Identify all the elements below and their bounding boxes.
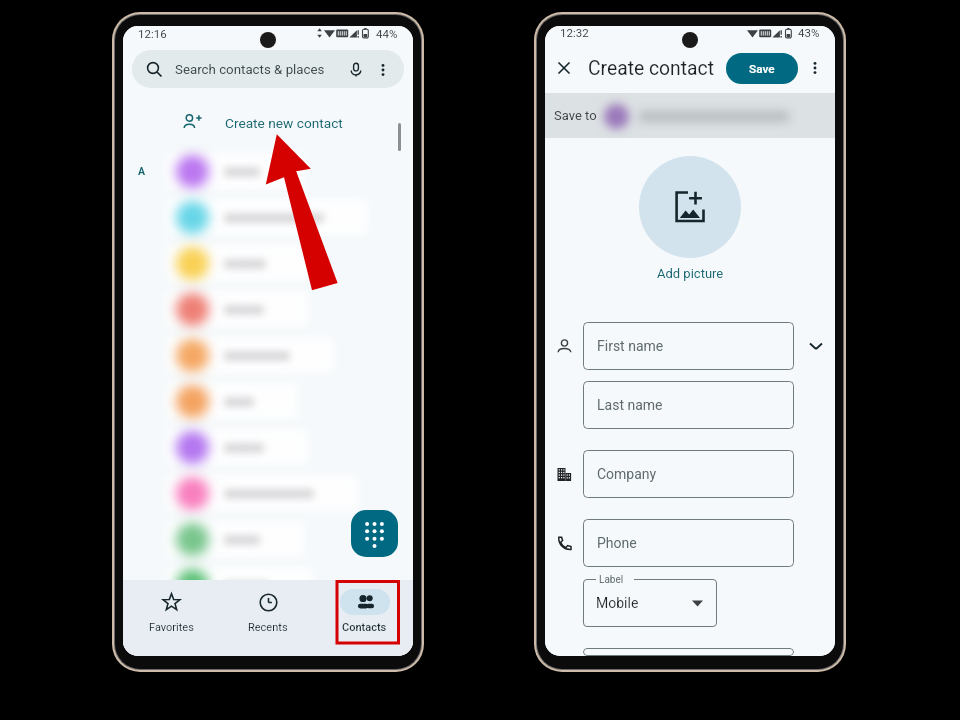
staticText: Create new contact <box>225 115 343 131</box>
button[interactable]: Contacts <box>316 580 413 656</box>
button[interactable]: Company <box>583 450 794 498</box>
button[interactable] <box>639 156 741 258</box>
staticText: 44% <box>376 27 398 40</box>
staticText: Add picture <box>657 266 724 281</box>
button[interactable] <box>123 332 413 378</box>
staticText: A <box>138 165 146 177</box>
staticText: Save to <box>554 108 597 123</box>
button[interactable]: Label <box>583 579 717 627</box>
button[interactable] <box>123 378 413 424</box>
button[interactable] <box>123 424 413 470</box>
staticText: Search contacts & places <box>175 62 325 78</box>
button[interactable]: Create new contact <box>123 110 413 136</box>
button[interactable]: Dialpad <box>351 510 398 557</box>
staticText: 43% <box>798 26 820 39</box>
staticText: Recents <box>248 621 288 634</box>
button[interactable] <box>583 648 794 656</box>
button[interactable] <box>123 240 413 286</box>
staticText: Favorites <box>149 621 194 634</box>
button[interactable]: First name <box>583 322 794 370</box>
staticText: Mobile <box>596 595 639 611</box>
staticText: First name <box>597 338 664 354</box>
staticText: 12:32 <box>560 26 589 39</box>
button[interactable]: Search contacts & places <box>132 50 404 88</box>
button[interactable]: Close <box>551 55 577 81</box>
button[interactable]: More options <box>805 58 825 78</box>
button[interactable]: Last name <box>583 381 794 429</box>
staticText: Phone <box>597 535 637 551</box>
staticText: Create contact <box>588 57 714 80</box>
staticText: Save <box>749 62 775 76</box>
button[interactable]: Favorites <box>123 580 219 656</box>
button[interactable]: Save <box>726 53 798 84</box>
button[interactable] <box>123 470 413 516</box>
button[interactable]: Recents <box>219 580 316 656</box>
button[interactable] <box>123 194 413 240</box>
button[interactable] <box>123 516 413 562</box>
staticText: Contacts <box>342 621 387 634</box>
button[interactable] <box>123 562 413 608</box>
staticText: Last name <box>597 397 663 413</box>
button[interactable] <box>123 148 413 194</box>
button[interactable] <box>123 286 413 332</box>
button[interactable]: Phone <box>583 519 794 567</box>
staticText: 12:16 <box>138 27 167 40</box>
staticText: Label <box>599 574 624 586</box>
button[interactable]: Expand <box>805 335 827 357</box>
staticText: Company <box>597 466 657 482</box>
